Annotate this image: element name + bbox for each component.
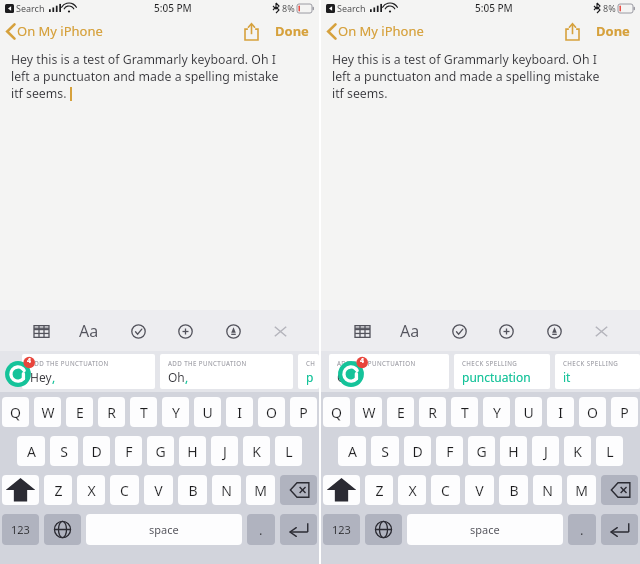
- staticText: .: [259, 521, 263, 539]
- button[interactable]: Add: [493, 318, 519, 344]
- button[interactable]: F: [115, 436, 142, 466]
- button[interactable]: CHECK SPELLING: [555, 354, 640, 389]
- button[interactable]: G: [147, 436, 174, 466]
- staticText: left a punctuaton and made a spelling mi…: [11, 68, 279, 85]
- button[interactable]: W: [34, 397, 61, 427]
- button[interactable]: On My iPhone: [327, 22, 424, 40]
- button[interactable]: 123: [2, 514, 39, 545]
- button[interactable]: Markup: [541, 318, 567, 344]
- button[interactable]: Shift: [323, 475, 360, 505]
- button[interactable]: U: [515, 397, 542, 427]
- button[interactable]: Shift: [2, 475, 39, 505]
- button[interactable]: R: [98, 397, 125, 427]
- button[interactable]: T: [451, 397, 478, 427]
- button[interactable]: X: [398, 475, 426, 505]
- button[interactable]: I: [226, 397, 253, 427]
- button[interactable]: F: [436, 436, 463, 466]
- button[interactable]: C: [110, 475, 139, 505]
- staticText: space: [149, 522, 179, 537]
- button[interactable]: S: [371, 436, 399, 466]
- button[interactable]: E: [66, 397, 93, 427]
- button[interactable]: Grammarly: [335, 355, 369, 389]
- button[interactable]: CHECK SPELLING: [298, 354, 319, 389]
- staticText: T: [461, 403, 469, 422]
- button[interactable]: G: [468, 436, 495, 466]
- button[interactable]: ADD THE PUNCTUATION: [160, 354, 293, 389]
- button[interactable]: space: [407, 514, 563, 545]
- button[interactable]: S: [50, 436, 78, 466]
- button[interactable]: Return: [601, 514, 638, 545]
- button[interactable]: J: [211, 436, 238, 466]
- button[interactable]: B: [178, 475, 207, 505]
- button[interactable]: H: [179, 436, 206, 466]
- button[interactable]: H: [500, 436, 527, 466]
- button[interactable]: 123: [323, 514, 360, 545]
- button[interactable]: R: [419, 397, 446, 427]
- button[interactable]: Switch language: [365, 514, 402, 545]
- button[interactable]: Add: [172, 318, 198, 344]
- button[interactable]: Checklist: [125, 318, 151, 344]
- button[interactable]: X: [77, 475, 105, 505]
- button[interactable]: Table: [349, 318, 375, 344]
- staticText: K: [573, 442, 582, 461]
- button[interactable]: Table: [28, 318, 54, 344]
- button[interactable]: V: [465, 475, 494, 505]
- button[interactable]: Q: [2, 397, 29, 427]
- button[interactable]: K: [564, 436, 591, 466]
- button[interactable]: T: [130, 397, 157, 427]
- button[interactable]: K: [243, 436, 270, 466]
- button[interactable]: Return: [280, 514, 317, 545]
- button[interactable]: Switch language: [44, 514, 81, 545]
- button[interactable]: Checklist: [446, 318, 472, 344]
- button[interactable]: Share: [560, 19, 584, 43]
- button[interactable]: A: [17, 436, 45, 466]
- button[interactable]: N: [533, 475, 562, 505]
- button[interactable]: Backspace: [601, 475, 638, 505]
- button[interactable]: C: [431, 475, 460, 505]
- button[interactable]: .: [247, 514, 275, 545]
- button[interactable]: Markup: [220, 318, 246, 344]
- button[interactable]: J: [532, 436, 559, 466]
- button[interactable]: Backspace: [280, 475, 317, 505]
- button[interactable]: I: [547, 397, 574, 427]
- button[interactable]: O: [258, 397, 285, 427]
- button[interactable]: P: [611, 397, 638, 427]
- button[interactable]: P: [290, 397, 317, 427]
- button[interactable]: Aa: [396, 316, 424, 346]
- button[interactable]: M: [567, 475, 596, 505]
- button[interactable]: B: [499, 475, 528, 505]
- button[interactable]: Q: [323, 397, 350, 427]
- button[interactable]: L: [596, 436, 623, 466]
- button[interactable]: L: [275, 436, 302, 466]
- button[interactable]: On My iPhone: [6, 22, 103, 40]
- button[interactable]: Y: [483, 397, 510, 427]
- button[interactable]: Done: [273, 18, 311, 44]
- button[interactable]: .: [568, 514, 596, 545]
- button[interactable]: CHECK SPELLING: [454, 354, 550, 389]
- button[interactable]: Z: [44, 475, 72, 505]
- button[interactable]: E: [387, 397, 414, 427]
- button[interactable]: ADD THE PUNCTUATION: [329, 354, 449, 389]
- button[interactable]: M: [246, 475, 275, 505]
- button[interactable]: Aa: [75, 316, 103, 346]
- button[interactable]: Z: [365, 475, 393, 505]
- button[interactable]: Grammarly: [2, 355, 36, 389]
- button[interactable]: Done: [594, 18, 632, 44]
- button[interactable]: Close: [267, 318, 293, 344]
- staticText: S: [381, 442, 389, 461]
- button[interactable]: Share: [239, 19, 263, 43]
- button[interactable]: A: [338, 436, 366, 466]
- button[interactable]: ADD THE PUNCTUATION: [22, 354, 155, 389]
- button[interactable]: Close: [588, 318, 614, 344]
- staticText: punctuation: [462, 369, 531, 385]
- button[interactable]: D: [83, 436, 110, 466]
- button[interactable]: D: [404, 436, 431, 466]
- button[interactable]: O: [579, 397, 606, 427]
- button[interactable]: W: [355, 397, 382, 427]
- button[interactable]: Y: [162, 397, 189, 427]
- staticText: U: [202, 403, 213, 422]
- button[interactable]: U: [194, 397, 221, 427]
- button[interactable]: N: [212, 475, 241, 505]
- button[interactable]: V: [144, 475, 173, 505]
- button[interactable]: space: [86, 514, 242, 545]
